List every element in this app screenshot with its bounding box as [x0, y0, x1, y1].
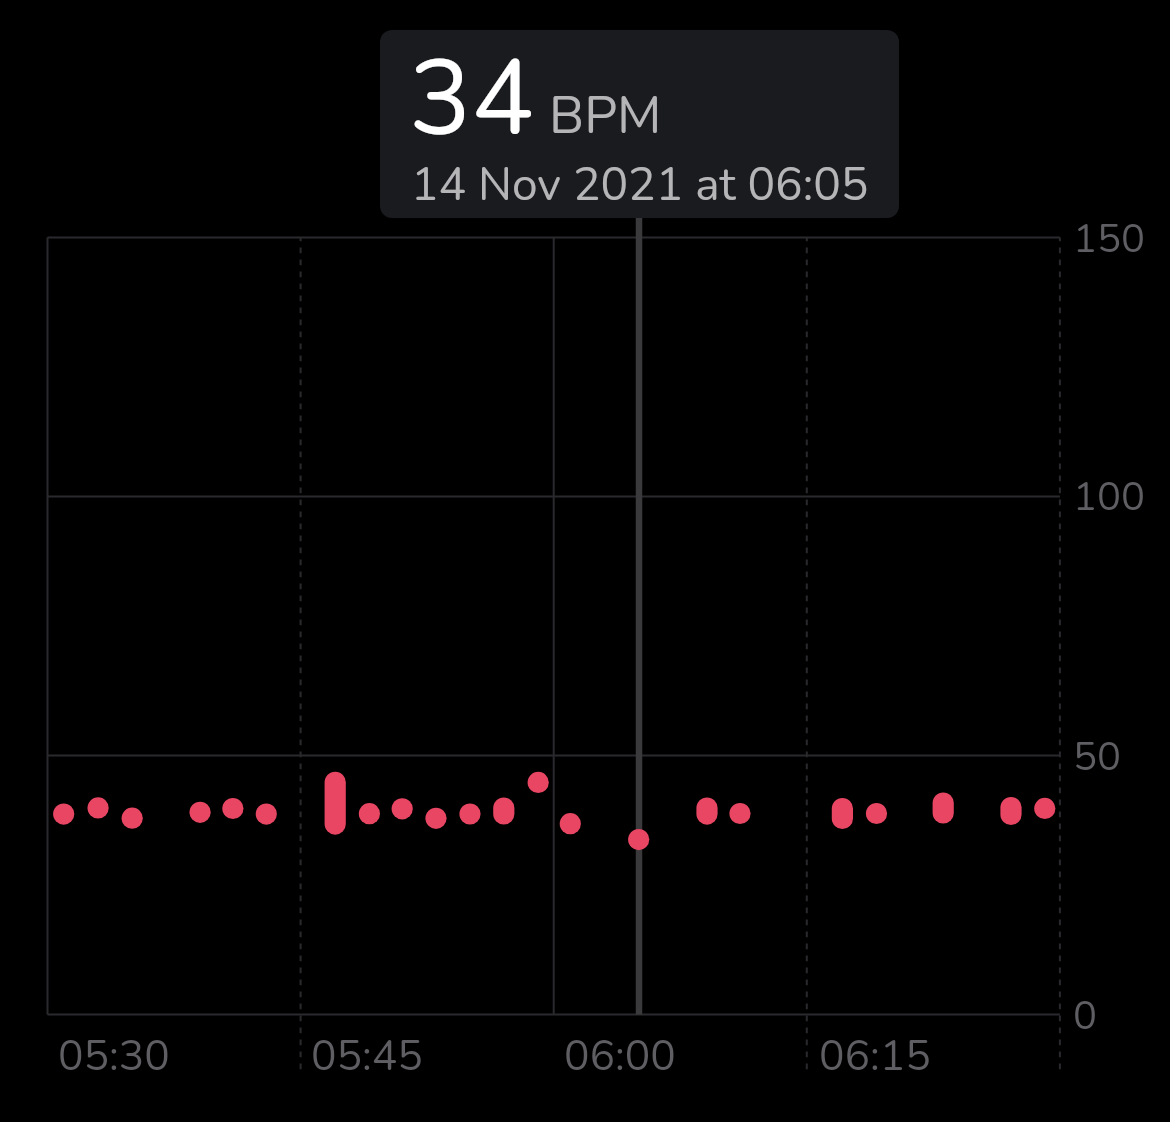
- staticText: 50: [1073, 730, 1121, 782]
- staticText: 0: [1073, 989, 1097, 1041]
- staticText: 06:00: [564, 1027, 676, 1085]
- staticText: 34: [409, 30, 534, 170]
- staticText: 150: [1073, 212, 1145, 264]
- staticText: 05:45: [311, 1027, 423, 1085]
- staticText: 06:15: [819, 1027, 931, 1085]
- staticText: 05:30: [58, 1027, 170, 1085]
- staticText: BPM: [549, 80, 662, 151]
- staticText: 14 Nov 2021 at 06:05: [411, 153, 869, 216]
- staticText: 100: [1073, 470, 1145, 522]
- button[interactable]: 34 BPM, 14 Nov 2021 at 06:05: [380, 30, 899, 218]
